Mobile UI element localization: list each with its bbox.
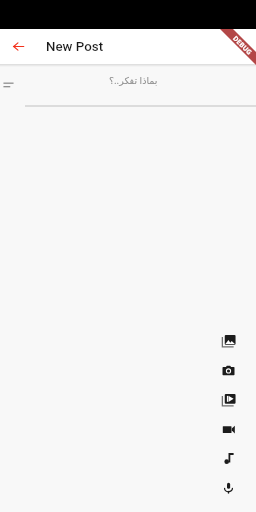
button[interactable]: Camera <box>221 363 236 378</box>
button[interactable]: Video library <box>221 393 236 408</box>
staticText: بماذا تفكر..؟ <box>109 74 158 87</box>
button[interactable]: Back <box>0 29 36 64</box>
button[interactable]: Record voice <box>221 481 236 496</box>
button[interactable]: Text format <box>0 75 17 93</box>
button[interactable]: Record video <box>221 422 236 437</box>
button[interactable]: Photo library <box>221 334 236 349</box>
button[interactable]: Audio <box>221 451 236 466</box>
staticText: DEBUG <box>231 34 254 57</box>
staticText: New Post <box>46 39 104 55</box>
